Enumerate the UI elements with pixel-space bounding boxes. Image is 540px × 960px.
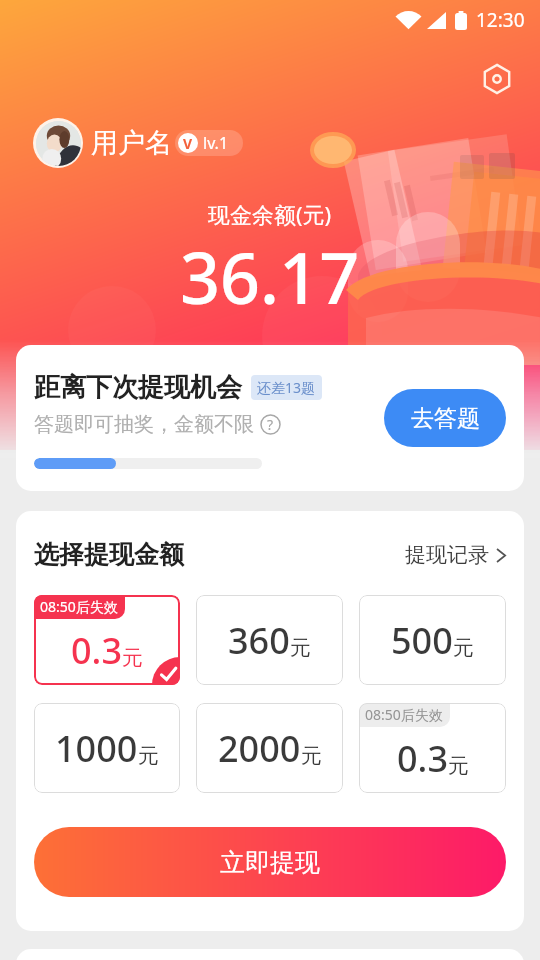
button[interactable]: 500 bbox=[359, 595, 506, 685]
button[interactable]: 2000 bbox=[196, 703, 343, 793]
button[interactable]: 用户名 bbox=[33, 118, 243, 168]
staticText: 答题即可抽奖，金额不限 bbox=[34, 412, 254, 437]
button[interactable]: 立即提现 bbox=[34, 827, 506, 897]
button[interactable]: Settings bbox=[480, 62, 514, 96]
staticText: 12:30 bbox=[476, 7, 525, 33]
staticText: 元 bbox=[301, 743, 322, 769]
staticText: 2000 bbox=[218, 724, 301, 773]
button[interactable]: 360 bbox=[196, 595, 343, 685]
button[interactable]: 08:50后失效 bbox=[34, 595, 180, 685]
staticText: 36.17 bbox=[180, 229, 360, 324]
staticText: 元 bbox=[448, 753, 469, 779]
staticText: 1000 bbox=[55, 724, 138, 773]
staticText: 0.3 bbox=[397, 734, 448, 783]
staticText: 0.3 bbox=[71, 626, 122, 675]
staticText: 去答题 bbox=[411, 404, 480, 433]
staticText: ? bbox=[267, 415, 274, 434]
button[interactable]: 提现记录 bbox=[405, 542, 506, 568]
staticText: 还差13题 bbox=[257, 378, 316, 397]
staticText: 提现记录 bbox=[405, 542, 489, 568]
staticText: 元 bbox=[290, 635, 311, 661]
staticText: V bbox=[183, 134, 193, 153]
staticText: 元 bbox=[138, 743, 159, 769]
staticText: 500 bbox=[391, 616, 453, 665]
button[interactable]: 1000 bbox=[34, 703, 180, 793]
staticText: 08:50后失效 bbox=[40, 597, 118, 616]
staticText: 现金余额(元) bbox=[208, 199, 332, 229]
staticText: 用户名 bbox=[91, 126, 172, 160]
staticText: 立即提现 bbox=[220, 847, 320, 878]
staticText: 元 bbox=[122, 645, 143, 671]
staticText: 元 bbox=[453, 635, 474, 661]
staticText: 360 bbox=[228, 616, 290, 665]
staticText: 选择提现金额 bbox=[34, 539, 184, 570]
staticText: lv.1 bbox=[203, 132, 229, 154]
button[interactable]: 去答题 bbox=[384, 389, 506, 447]
staticText: 距离下次提现机会 bbox=[34, 371, 242, 404]
staticText: 08:50后失效 bbox=[365, 705, 443, 724]
button[interactable]: 08:50后失效 bbox=[359, 703, 506, 793]
